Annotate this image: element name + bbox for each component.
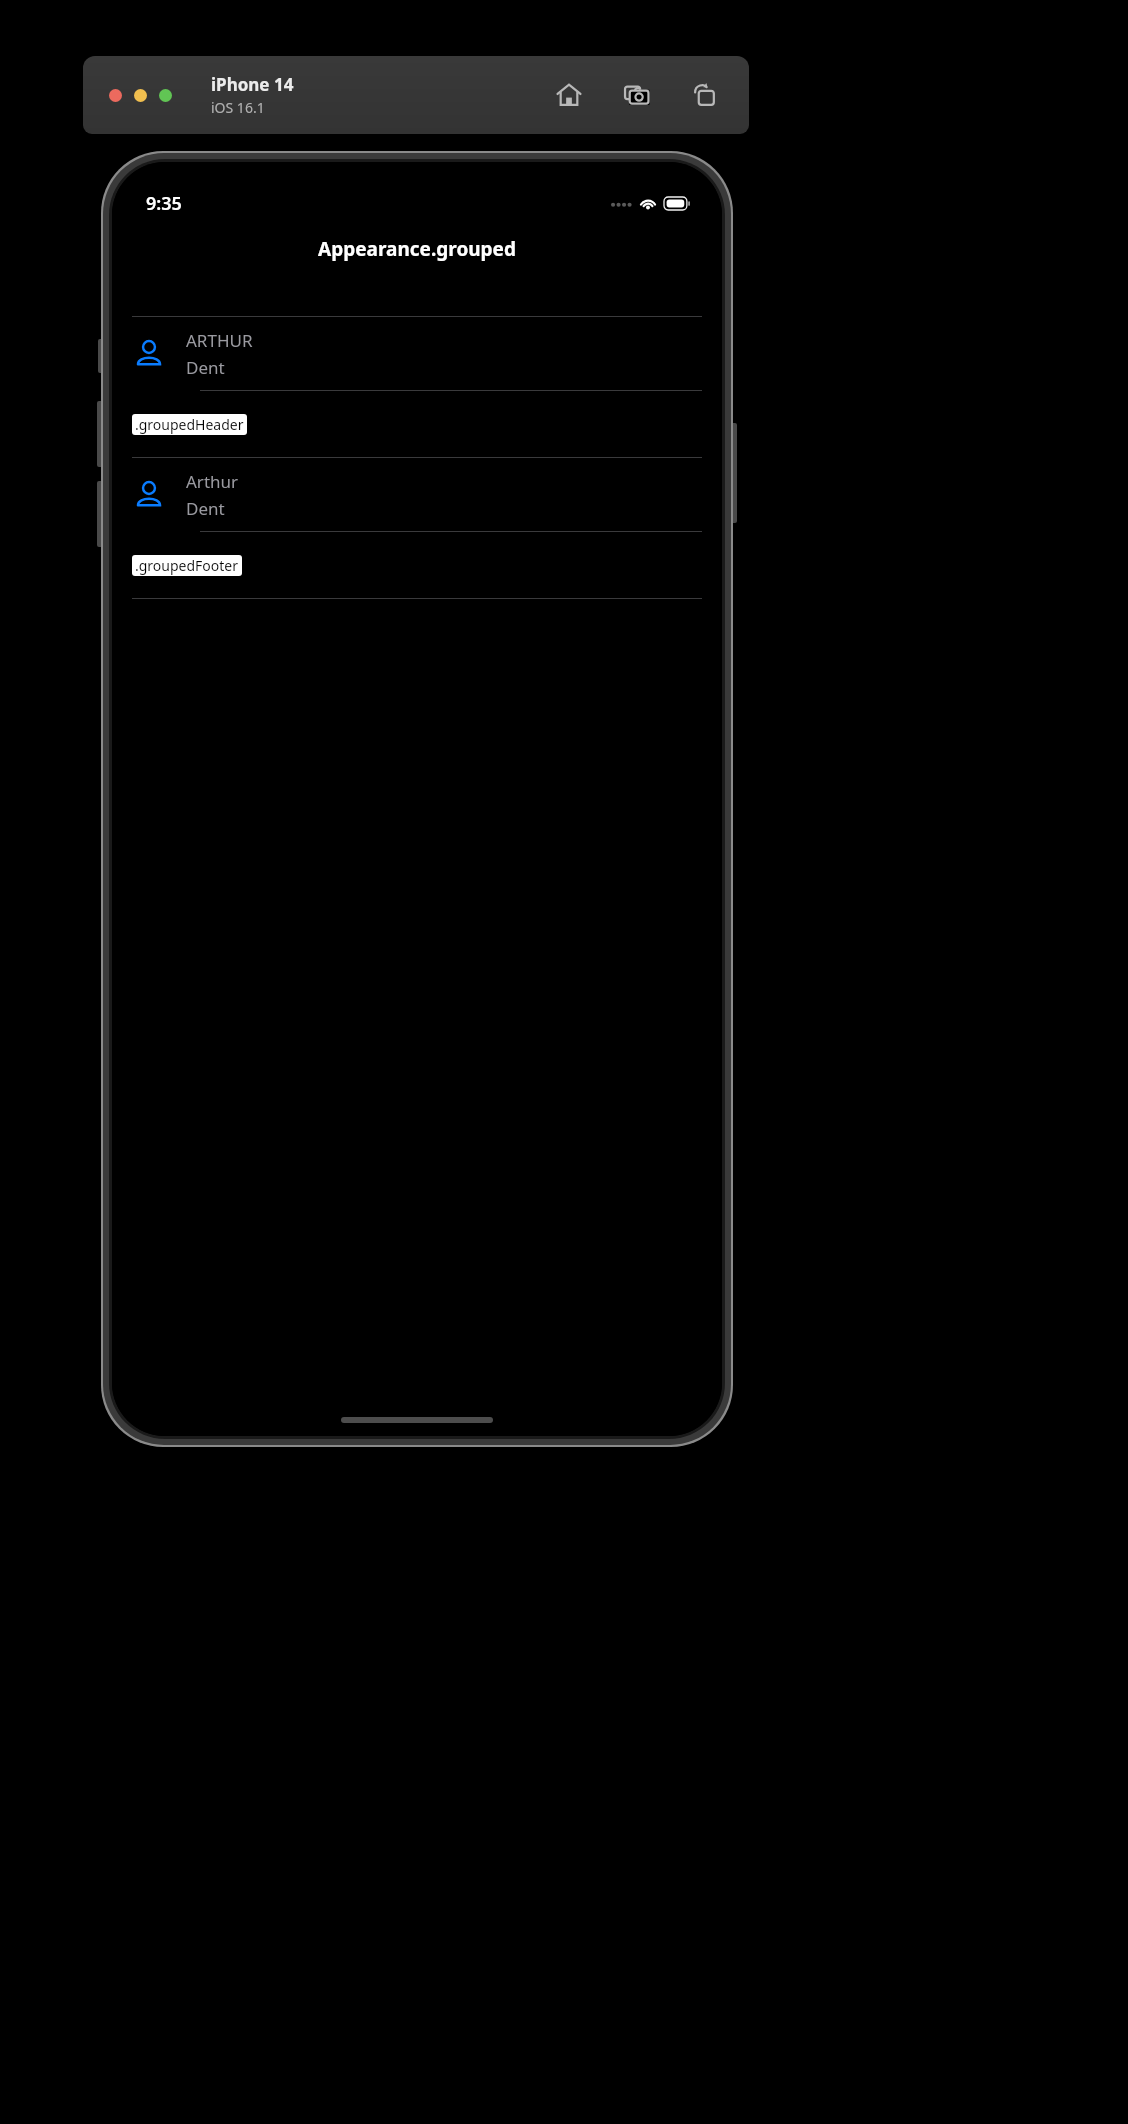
staticText: .groupedHeader <box>135 415 244 434</box>
button[interactable]: Home <box>551 77 587 113</box>
staticText: iOS 16.1 <box>211 98 265 117</box>
button[interactable]: Close <box>109 89 122 102</box>
button[interactable]: .groupedFooter <box>132 555 242 576</box>
staticText: Dent <box>186 356 225 379</box>
button[interactable]: Minimise <box>134 89 147 102</box>
button[interactable]: Rotate <box>687 77 723 113</box>
button[interactable]: Contact <box>112 458 722 531</box>
staticText: ARTHUR <box>186 329 253 352</box>
other: Contact <box>132 478 166 512</box>
button[interactable]: .groupedHeader <box>132 414 247 435</box>
staticText: Appearance.grouped <box>318 236 516 262</box>
button[interactable]: Screenshot <box>619 77 655 113</box>
other: Contact <box>132 337 166 371</box>
button[interactable]: Zoom <box>159 89 172 102</box>
staticText: Arthur <box>186 470 239 493</box>
button[interactable]: Contact <box>112 317 722 390</box>
staticText: iPhone 14 <box>211 73 294 96</box>
staticText: 9:35 <box>146 191 182 216</box>
staticText: Dent <box>186 497 225 520</box>
staticText: .groupedFooter <box>135 556 239 575</box>
